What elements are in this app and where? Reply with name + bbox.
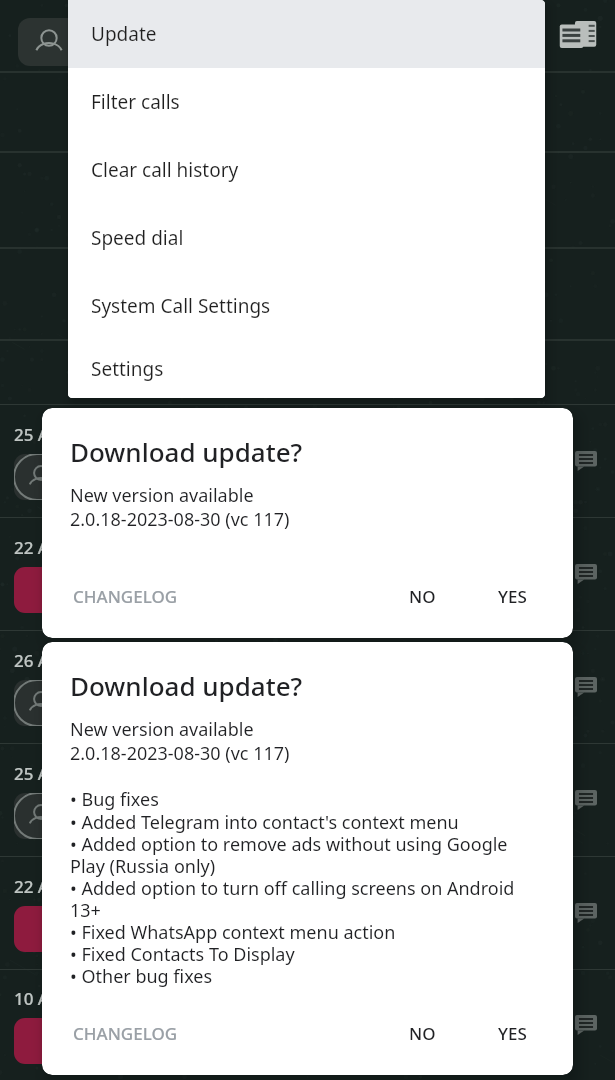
- button[interactable]: Contact: [18, 18, 80, 66]
- staticText: Settings: [91, 356, 164, 382]
- staticText: NO: [409, 585, 436, 608]
- button[interactable]: Message: [571, 785, 601, 815]
- staticText: YES: [498, 585, 527, 608]
- staticText: NO: [409, 1022, 436, 1045]
- staticText: YES: [498, 1022, 527, 1045]
- staticText: 25 A: [14, 762, 50, 785]
- button[interactable]: NO: [401, 577, 444, 616]
- button[interactable]: CHANGELOG: [71, 577, 180, 616]
- staticText: CHANGELOG: [73, 1022, 178, 1045]
- button[interactable]: System Call Settings: [68, 272, 545, 340]
- staticText: Update: [91, 21, 157, 47]
- staticText: New version available 2.0.18-2023-08-30 …: [70, 717, 290, 765]
- button[interactable]: YES: [490, 1014, 535, 1053]
- staticText: 22 A: [14, 536, 50, 559]
- staticText: 25 A: [14, 423, 50, 446]
- button[interactable]: 26 A: [0, 630, 615, 743]
- staticText: Download update?: [70, 668, 303, 703]
- button[interactable]: Message: [571, 1010, 601, 1040]
- button[interactable]: 22 A: [0, 856, 615, 969]
- button[interactable]: YES: [490, 577, 535, 616]
- staticText: New version available 2.0.18-2023-08-30 …: [70, 483, 290, 531]
- staticText: 10 A: [14, 987, 50, 1010]
- button[interactable]: Notes: [555, 13, 601, 59]
- button[interactable]: Message: [571, 672, 601, 702]
- staticText: Filter calls: [91, 89, 180, 115]
- button[interactable]: Update: [68, 0, 545, 68]
- button[interactable]: Speed dial: [68, 204, 545, 272]
- button[interactable]: Message: [571, 446, 601, 476]
- button[interactable]: Filter calls: [68, 68, 545, 136]
- staticText: CHANGELOG: [73, 585, 178, 608]
- button[interactable]: Message: [571, 559, 601, 589]
- staticText: System Call Settings: [91, 293, 271, 319]
- staticText: Clear call history: [91, 157, 239, 183]
- staticText: Speed dial: [91, 225, 184, 251]
- staticText: 22 A: [14, 875, 50, 898]
- staticText: • Bug fixes • Added Telegram into contac…: [70, 787, 515, 988]
- staticText: Download update?: [70, 434, 303, 469]
- staticText: 26 A: [14, 649, 50, 672]
- button[interactable]: 22 A: [0, 517, 615, 630]
- button[interactable]: Clear call history: [68, 136, 545, 204]
- button[interactable]: Message: [571, 898, 601, 928]
- button[interactable]: 10 A: [0, 969, 615, 1080]
- button[interactable]: CHANGELOG: [71, 1014, 180, 1053]
- button[interactable]: NO: [401, 1014, 444, 1053]
- button[interactable]: Settings: [68, 340, 545, 398]
- button[interactable]: 25 A: [0, 404, 615, 517]
- button[interactable]: 25 A: [0, 743, 615, 856]
